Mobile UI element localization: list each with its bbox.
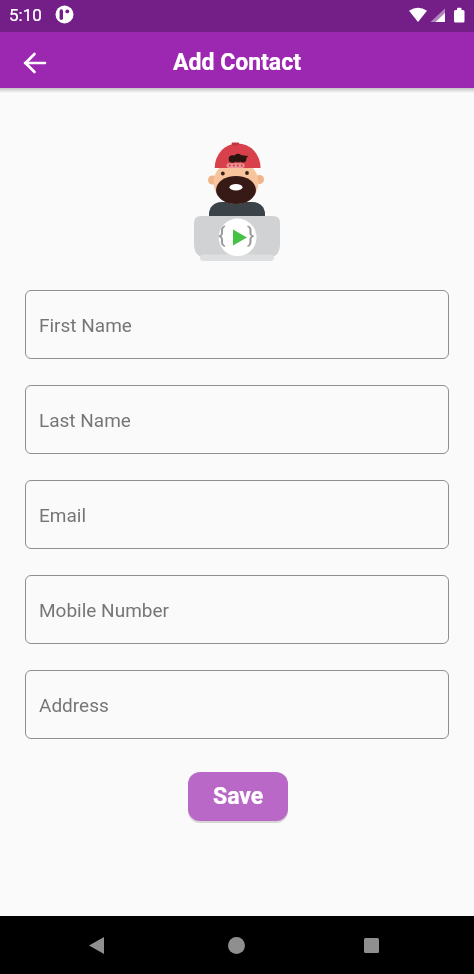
staticText: Last Name <box>39 409 131 431</box>
staticText: } <box>247 223 255 249</box>
button[interactable]: Address <box>25 670 449 739</box>
button[interactable]: Email <box>25 480 449 549</box>
button[interactable]: First Name <box>25 290 449 359</box>
button[interactable] <box>214 923 258 967</box>
button[interactable] <box>74 923 118 967</box>
staticText: { <box>218 223 226 249</box>
staticText: Add Contact <box>173 49 301 76</box>
staticText: 5:10 <box>9 5 42 25</box>
button[interactable] <box>18 46 52 80</box>
staticText: Address <box>39 694 109 716</box>
staticText: Save <box>213 783 264 810</box>
staticText: First Name <box>39 314 132 336</box>
button[interactable] <box>349 923 393 967</box>
staticText: Mobile Number <box>39 599 169 621</box>
button[interactable]: Mobile Number <box>25 575 449 644</box>
button[interactable]: Last Name <box>25 385 449 454</box>
staticText: Email <box>39 504 87 526</box>
button[interactable]: Save <box>188 772 288 821</box>
